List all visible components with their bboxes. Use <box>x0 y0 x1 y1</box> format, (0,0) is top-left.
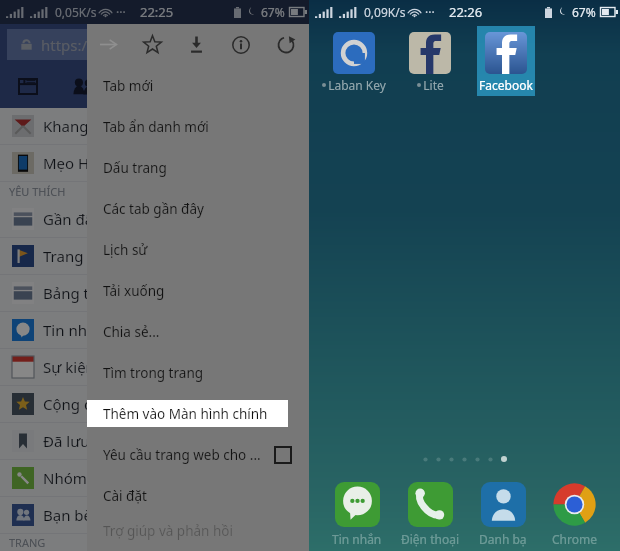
staticText: Bạn bè <box>43 505 93 525</box>
staticText: Tìm trong trang <box>103 364 204 382</box>
staticText: Mẹo Ha <box>43 153 98 173</box>
button[interactable]: Lite <box>395 26 465 96</box>
button[interactable]: Tab mới <box>87 65 309 106</box>
button[interactable]: Facebook <box>471 26 541 96</box>
staticText: Khang N <box>43 116 104 136</box>
button[interactable]: Nhóm <box>0 460 309 496</box>
staticText: ··· <box>425 4 435 20</box>
staticText: 0,05K/s <box>55 4 97 20</box>
button[interactable]: Notifications <box>110 64 165 108</box>
staticText: Tải xuống <box>103 282 165 300</box>
staticText: Lịch sử <box>103 241 148 259</box>
button[interactable]: Reload <box>265 24 307 65</box>
button[interactable]: Đã lưu <box>0 423 309 459</box>
staticText: Trợ giúp và phản hồi <box>103 522 233 540</box>
staticText: Cộng đồng <box>43 394 121 414</box>
staticText: Gần đây <box>43 209 101 229</box>
button[interactable]: Page info <box>220 24 262 65</box>
staticText: 0,09K/s <box>364 4 406 20</box>
staticText: Bảng tin <box>43 283 103 303</box>
button[interactable]: Gần đây <box>0 201 309 237</box>
staticText: Các tab gần đây <box>103 200 204 218</box>
staticText: 22:25 <box>140 3 174 21</box>
button[interactable]: Forward <box>87 24 129 65</box>
button[interactable]: Tab ẩn danh mới <box>87 106 309 147</box>
staticText: Dấu trang <box>103 159 167 177</box>
button[interactable]: Tải xuống <box>87 270 309 311</box>
staticText: Đã lưu <box>43 431 90 451</box>
button[interactable]: Friends <box>55 64 110 108</box>
button[interactable]: Sự kiện <box>0 349 309 385</box>
staticText: Chia sẻ... <box>103 323 160 341</box>
button[interactable]: Các tab gần đây <box>87 188 309 229</box>
staticText: Chrome <box>552 531 597 547</box>
staticText: Tin nhắn <box>43 320 105 340</box>
staticText: Lite <box>423 77 444 93</box>
button[interactable]: Danh bạ <box>469 482 537 547</box>
button[interactable]: Thêm vào Màn hình chính <box>87 393 309 434</box>
staticText: Điện thoại <box>401 531 459 547</box>
button[interactable]: Bạn bè <box>0 497 309 533</box>
staticText: Facebook <box>479 77 533 93</box>
button[interactable]: Tin nhắn <box>323 482 391 547</box>
button[interactable]: News feed <box>0 64 55 108</box>
button[interactable]: Bảng tin <box>0 275 309 311</box>
staticText: ··· <box>116 4 126 20</box>
staticText: Trang <box>43 246 84 266</box>
button[interactable]: Chia sẻ... <box>87 311 309 352</box>
button[interactable]: Yêu cầu trang web cho ... <box>87 434 309 475</box>
button[interactable]: Khang N <box>0 108 309 144</box>
button[interactable]: Lịch sử <box>87 229 309 270</box>
button[interactable]: Cộng đồng <box>0 386 309 422</box>
button[interactable]: Chrome <box>540 482 608 547</box>
button[interactable]: Mẹo Ha <box>0 145 309 181</box>
button[interactable]: Trang <box>0 238 309 274</box>
button[interactable]: Trợ giúp và phản hồi <box>87 516 309 546</box>
button[interactable]: Cài đặt <box>87 475 309 516</box>
button[interactable]: Điện thoại <box>396 482 464 547</box>
staticText: 22:26 <box>449 3 483 21</box>
staticText: Tab mới <box>103 77 154 95</box>
button[interactable]: Tin nhắn <box>0 312 309 348</box>
button[interactable]: Bookmark <box>131 24 173 65</box>
staticText: Thêm vào Màn hình chính <box>103 405 268 423</box>
staticText: TRANG <box>9 535 46 550</box>
staticText: YÊU THÍCH <box>9 184 66 199</box>
button[interactable]: Laban Key <box>319 26 389 96</box>
staticText: https://mbasic.facebook.com <box>41 35 246 55</box>
button[interactable]: Dấu trang <box>87 147 309 188</box>
button[interactable]: Download <box>175 24 217 65</box>
staticText: Laban Key <box>328 77 386 93</box>
staticText: Danh bạ <box>479 531 527 547</box>
staticText: Yêu cầu trang web cho ... <box>103 446 261 464</box>
staticText: Tab ẩn danh mới <box>103 118 209 136</box>
button[interactable]: Tìm trong trang <box>87 352 309 393</box>
staticText: Tin nhắn <box>332 531 382 547</box>
staticText: Cài đặt <box>103 487 147 505</box>
staticText: 67% <box>572 4 596 20</box>
staticText: Nhóm <box>43 468 87 488</box>
staticText: 67% <box>261 4 285 20</box>
staticText: Sự kiện <box>43 357 95 377</box>
